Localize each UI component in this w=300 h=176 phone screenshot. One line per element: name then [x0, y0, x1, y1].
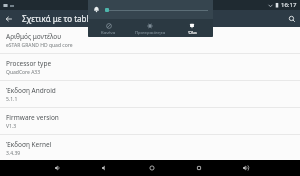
staticText: Αριθμός μοντέλου [6, 32, 62, 41]
staticText: Firmware version [6, 113, 59, 122]
button[interactable]: Αριθμός μοντέλου [0, 27, 300, 54]
button[interactable]: Search [283, 10, 300, 27]
staticText: Έκδοση Android [6, 86, 56, 95]
staticText: Όλα [188, 30, 197, 36]
staticText: Κανένα [101, 30, 116, 36]
staticText: Σχετικά με το tablet [22, 13, 96, 24]
staticText: Προτεραιότητα [135, 30, 166, 36]
staticText: eSTAR GRAND HD quad core [6, 42, 73, 49]
staticText: Processor type [6, 59, 52, 68]
staticText: 16:17 [281, 1, 297, 9]
staticText: 5.1.1 [6, 96, 18, 103]
button[interactable]: Recents [191, 160, 207, 176]
button[interactable]: Έκδοση Android [0, 81, 300, 108]
button[interactable]: Firmware version [0, 108, 300, 135]
button[interactable]: Volume down [50, 160, 66, 176]
staticText: 3.4.39 dbuilder@Android-41-4 Wed Jun 17 … [6, 150, 77, 156]
button[interactable]: Mute [97, 160, 113, 176]
button[interactable]: Κανένα [88, 19, 129, 37]
button[interactable]: Προτεραιότητα [129, 19, 171, 37]
button[interactable]: Back [0, 10, 17, 27]
staticText: QuadCore A33 [6, 69, 41, 76]
button[interactable]: Processor type [0, 54, 300, 81]
button[interactable]: Volume up [238, 160, 254, 176]
button[interactable]: Όλα [171, 19, 213, 37]
staticText: V1.3 [6, 123, 17, 130]
staticText: Έκδοση Kernel [6, 140, 52, 149]
button[interactable]: Έκδοση Kernel [0, 135, 300, 160]
button[interactable]: Home [144, 160, 160, 176]
